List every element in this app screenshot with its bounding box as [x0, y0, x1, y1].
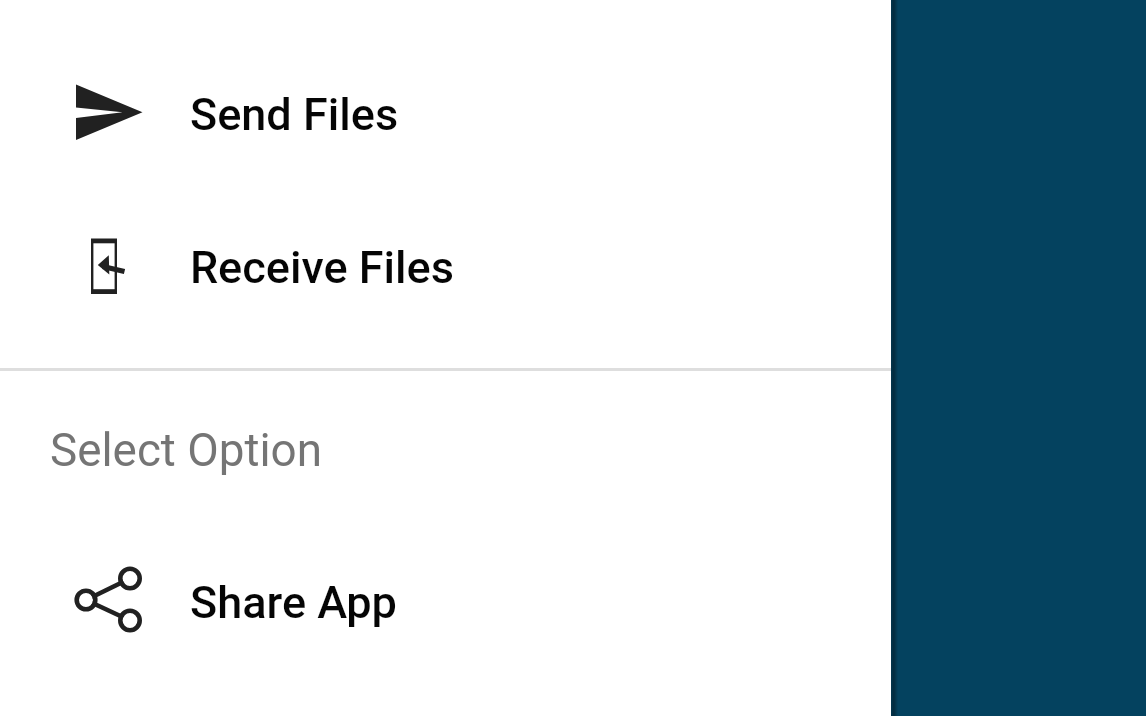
button[interactable]: Share App: [0, 554, 891, 650]
button[interactable]: Send Files: [0, 66, 891, 162]
staticText: Receive Files: [190, 241, 455, 294]
staticText: Select Option: [50, 424, 322, 478]
staticText: Send Files: [190, 88, 399, 141]
staticText: Share App: [190, 576, 397, 629]
button[interactable]: Receive Files: [0, 219, 891, 315]
